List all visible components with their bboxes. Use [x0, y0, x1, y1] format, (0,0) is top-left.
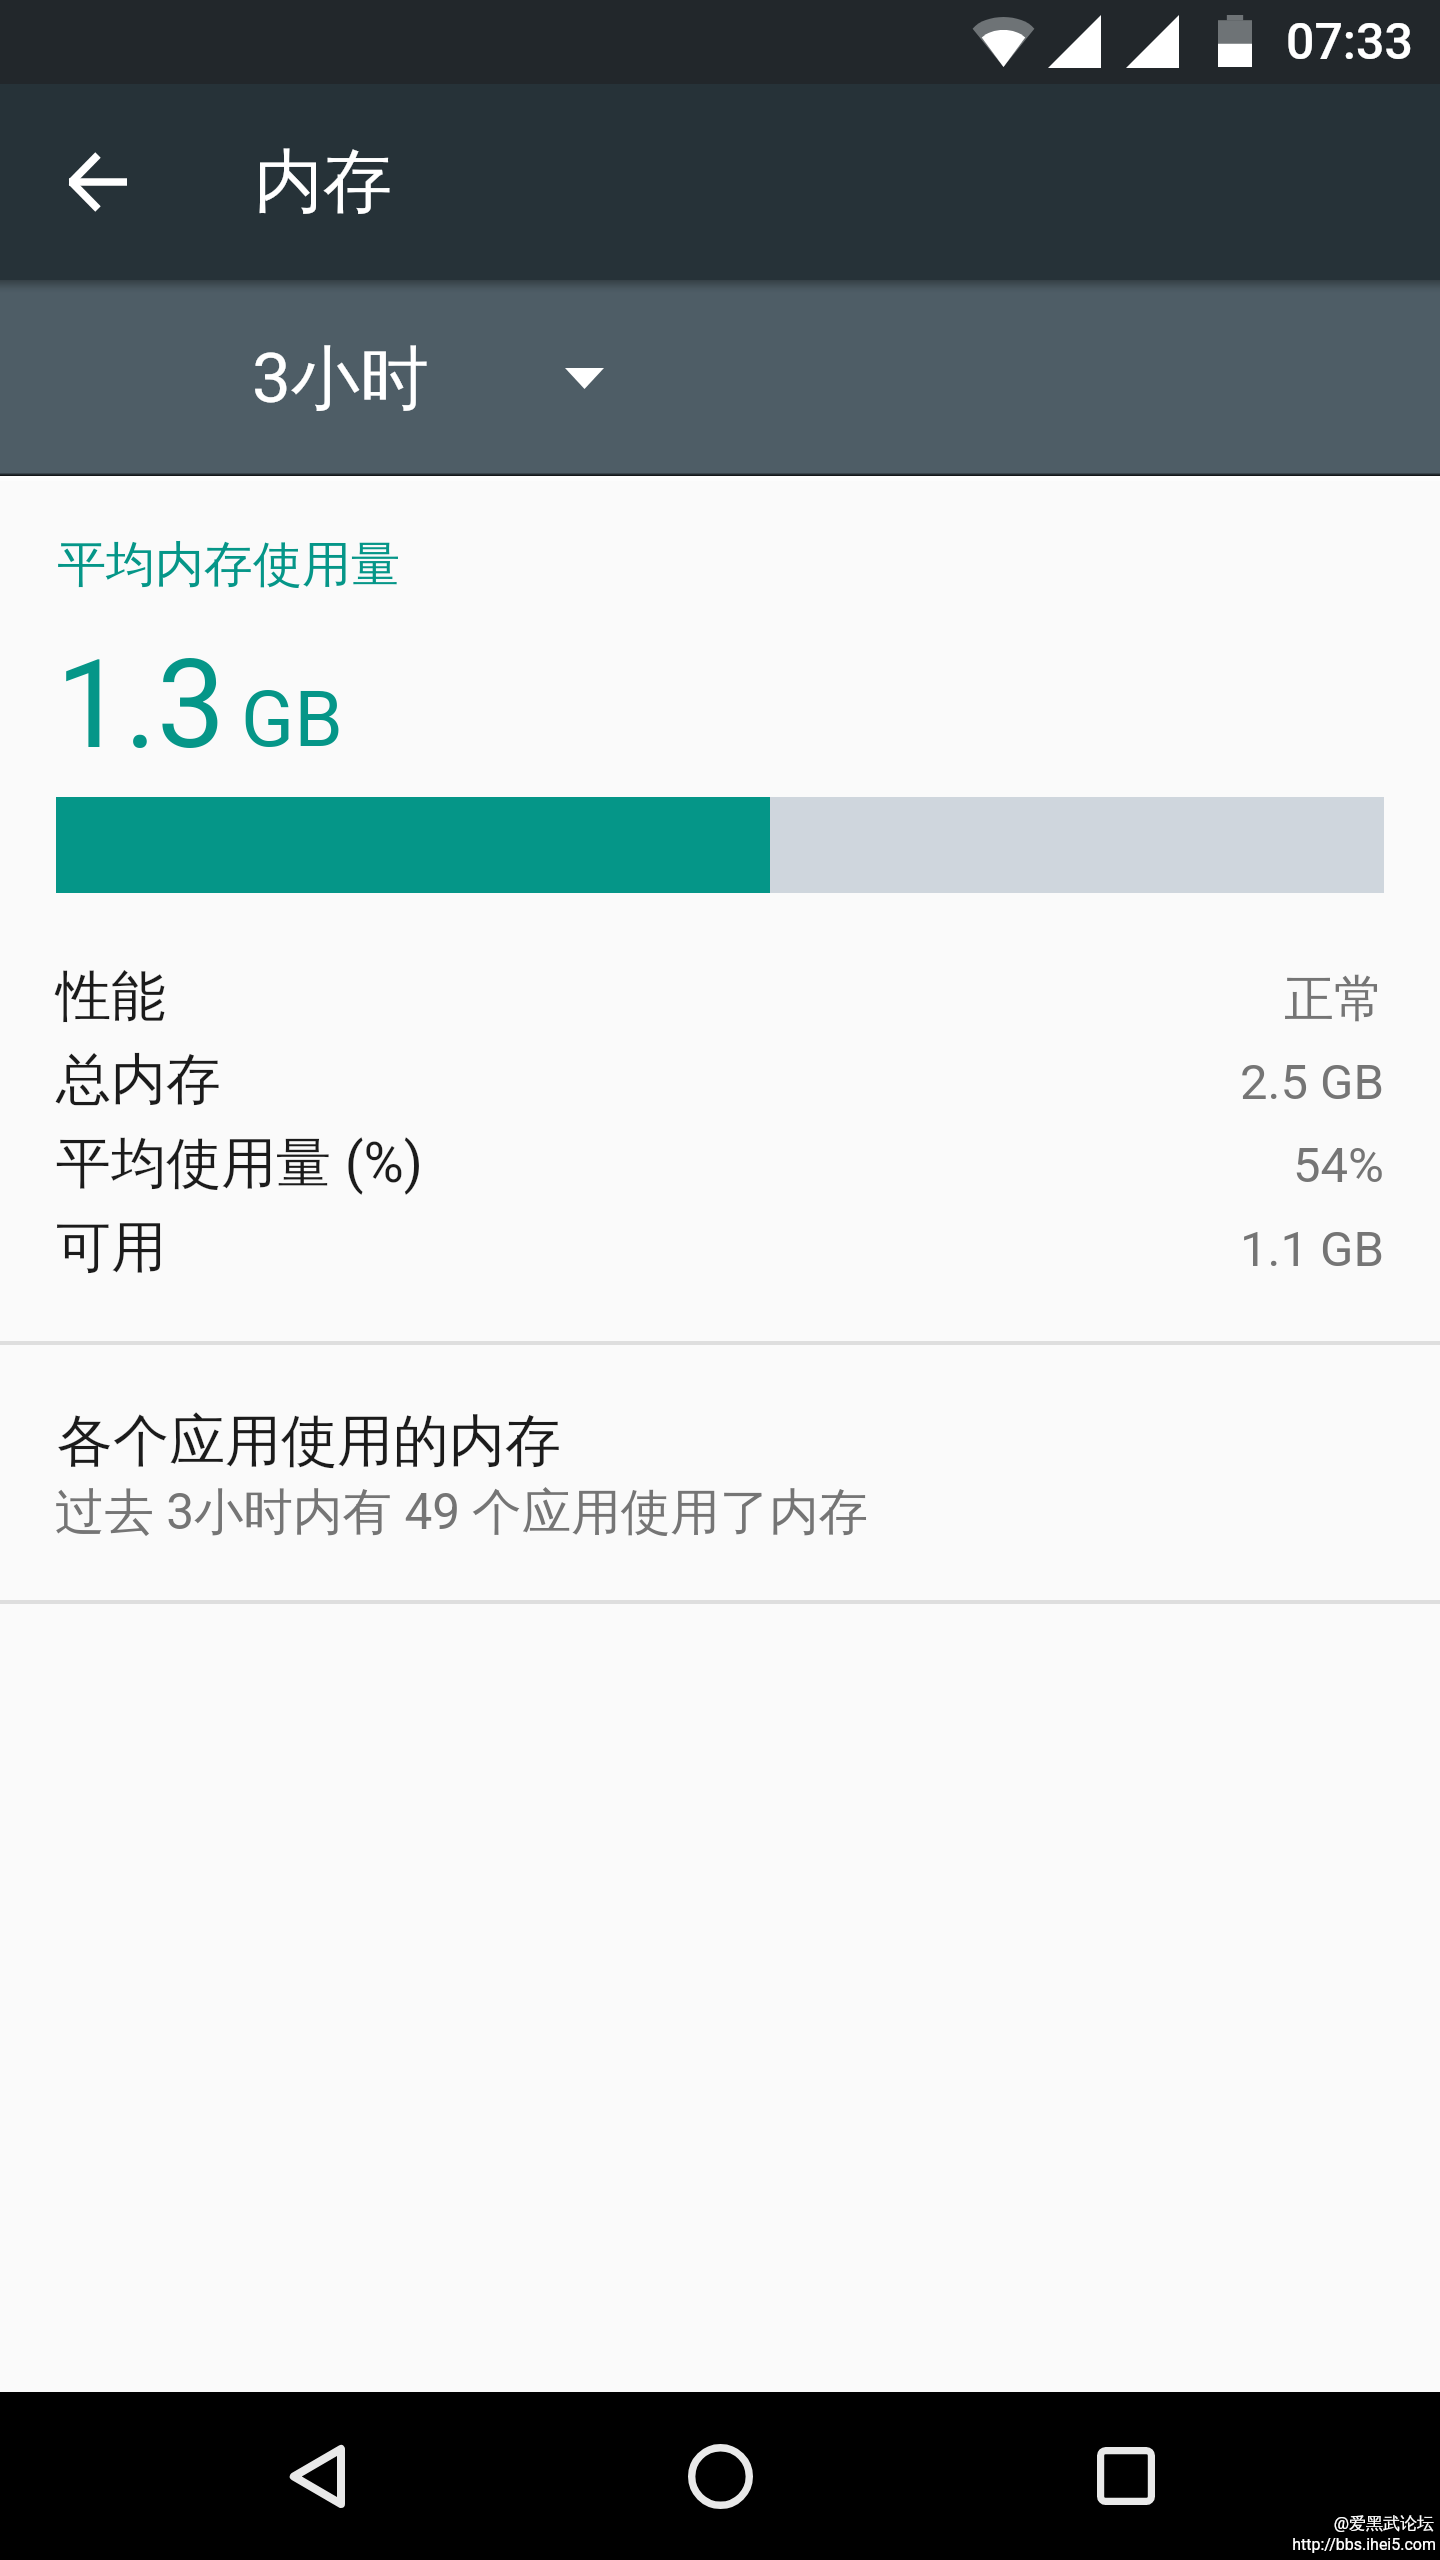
staticText: GB — [241, 674, 343, 765]
staticText: 07:33 — [1286, 13, 1413, 72]
button[interactable]: Back — [236, 2396, 396, 2556]
staticText: 1.1 GB — [0, 1221, 1384, 1278]
staticText: 可用 — [56, 1213, 166, 1282]
button[interactable]: Back — [26, 110, 170, 254]
button[interactable]: Recents — [1046, 2396, 1206, 2556]
staticText: 各个应用使用的内存 — [57, 1406, 561, 1477]
staticText: 平均使用量 (%) — [56, 1129, 423, 1198]
staticText: 性能 — [56, 962, 166, 1031]
staticText: 54% — [0, 1137, 1384, 1194]
staticText: 内存 — [254, 139, 392, 226]
button[interactable]: 各个应用使用的内存 — [0, 1344, 1440, 1600]
staticText: 总内存 — [56, 1045, 221, 1114]
staticText: 正常 — [0, 968, 1384, 1031]
staticText: 过去 3小时内有 49 个应用使用了内存 — [55, 1481, 869, 1543]
staticText: 平均内存使用量 — [57, 534, 400, 596]
staticText: http://bbs.ihei5.com — [0, 2535, 1436, 2554]
staticText: 1.3 — [56, 634, 226, 777]
staticText: @爱黑武论坛 — [0, 2513, 1434, 2534]
button[interactable]: 3小时 — [214, 280, 650, 476]
staticText: 3小时 — [252, 336, 429, 423]
staticText: 2.5 GB — [0, 1054, 1384, 1111]
button[interactable]: Home — [640, 2396, 800, 2556]
